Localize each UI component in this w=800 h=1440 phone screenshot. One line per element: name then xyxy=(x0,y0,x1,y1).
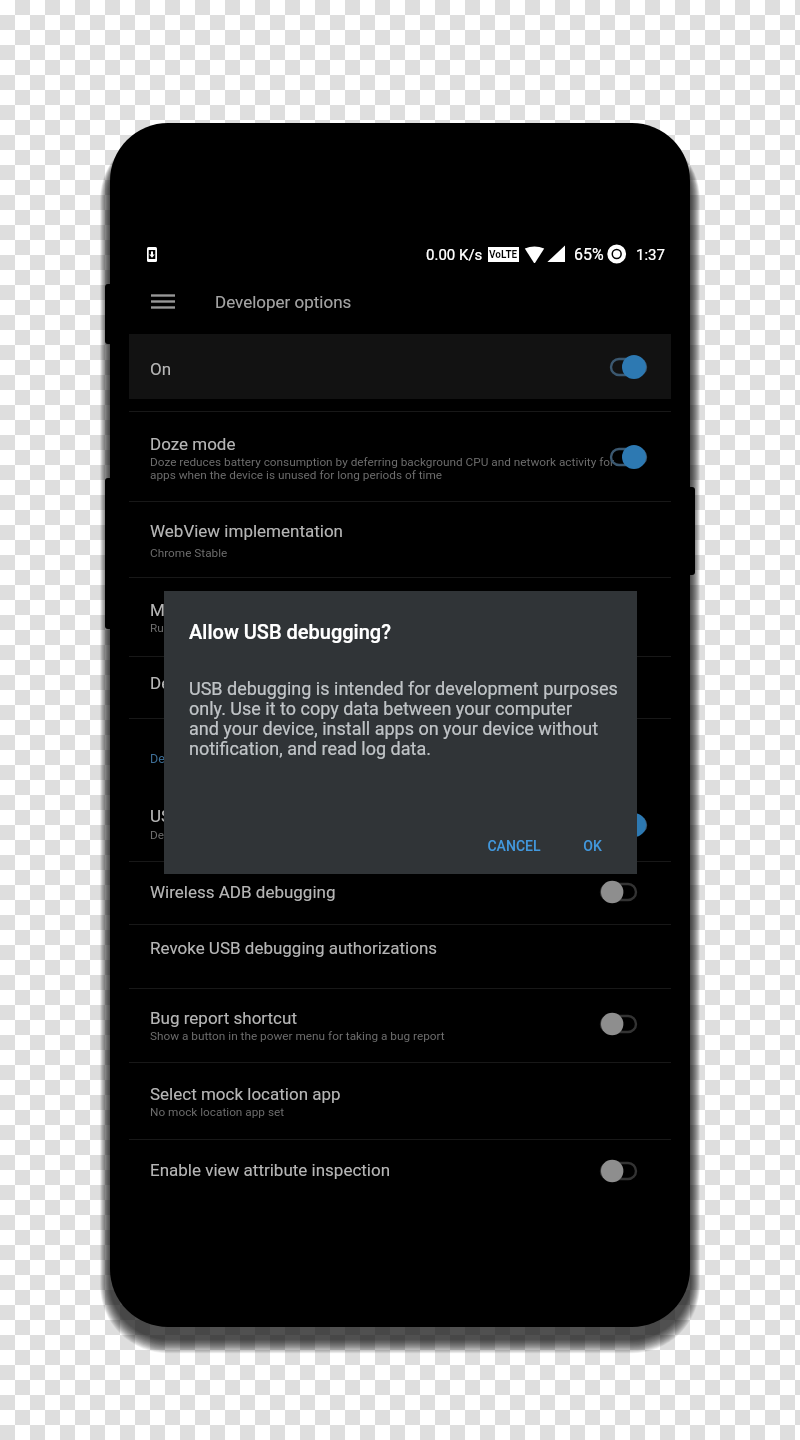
button[interactable]: Bug report shortcut xyxy=(129,988,671,1062)
staticText: Select mock location app xyxy=(150,1084,341,1104)
button[interactable]: Volume up xyxy=(105,284,115,344)
staticText: Bug report shortcut xyxy=(150,1008,297,1028)
button[interactable]: Open navigation drawer xyxy=(140,281,186,325)
staticText: 65% xyxy=(574,245,604,264)
button[interactable]: Switch, on xyxy=(603,348,657,386)
staticText: Default USB configuration xyxy=(150,673,345,693)
staticText: VoLTE xyxy=(489,249,518,261)
staticText: USB debugging xyxy=(150,806,266,826)
button[interactable]: Select mock location app xyxy=(129,1062,671,1139)
staticText: CANCEL xyxy=(487,838,541,854)
staticText: Mock location app xyxy=(150,600,290,620)
staticText: No mock location app set xyxy=(150,1105,285,1119)
staticText: Enable view attribute inspection xyxy=(150,1160,391,1180)
button[interactable]: Default USB configuration xyxy=(129,656,671,718)
button[interactable]: Switch, off xyxy=(593,1152,647,1190)
staticText: Revoke USB debugging authorizations xyxy=(150,938,438,958)
button[interactable]: Revoke USB debugging authorizations xyxy=(129,924,671,988)
staticText: Running services xyxy=(150,621,240,635)
button[interactable]: WebView implementation xyxy=(129,501,671,577)
staticText: Debug mode when USB is connected xyxy=(150,828,343,842)
button[interactable]: Wireless ADB debugging xyxy=(129,861,671,924)
staticText: Allow USB debugging? xyxy=(189,620,391,643)
staticText: On xyxy=(150,359,172,379)
staticText: Wireless ADB debugging xyxy=(150,882,336,902)
staticText: Doze mode xyxy=(150,434,236,454)
button[interactable]: Enable view attribute inspection xyxy=(129,1139,671,1200)
staticText: notification, and read log data. xyxy=(189,738,431,759)
button[interactable]: Switch, off xyxy=(593,1005,647,1043)
staticText: Show a button in the power menu for taki… xyxy=(150,1029,445,1043)
staticText: Debugging xyxy=(150,751,210,766)
staticText: 0.00 K/s xyxy=(426,246,483,264)
button[interactable]: Mock location app xyxy=(129,577,671,656)
staticText: USB debugging is intended for developmen… xyxy=(189,678,618,699)
staticText: 1:37 xyxy=(636,246,665,264)
staticText: only. Use it to copy data between your c… xyxy=(189,698,573,719)
button[interactable]: Power xyxy=(685,487,695,575)
button[interactable]: Switch, on xyxy=(603,806,657,844)
staticText: OK xyxy=(583,838,602,854)
button[interactable]: OK xyxy=(566,826,618,866)
button[interactable]: On xyxy=(129,334,671,399)
staticText: Chrome Stable xyxy=(150,546,228,560)
button[interactable]: Debugging xyxy=(129,718,671,861)
staticText: WebView implementation xyxy=(150,521,343,541)
staticText: Developer options xyxy=(215,292,352,312)
button[interactable]: Doze mode xyxy=(129,411,671,501)
button[interactable]: Switch, on xyxy=(603,438,657,476)
staticText: and your device, install apps on your de… xyxy=(189,718,599,739)
staticText: Doze reduces battery consumption by defe… xyxy=(150,455,615,482)
button[interactable]: CANCEL xyxy=(468,826,560,866)
button[interactable]: Switch, off xyxy=(593,873,647,911)
button[interactable]: Volume down xyxy=(105,478,115,629)
